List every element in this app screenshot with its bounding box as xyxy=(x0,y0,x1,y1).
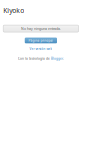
staticText: . xyxy=(63,56,64,61)
staticText: Página principal xyxy=(28,38,53,43)
staticText: Con la tecnología de xyxy=(18,56,51,61)
button[interactable]: Ver versión web xyxy=(29,47,52,51)
staticText: Ver versión web xyxy=(29,47,52,51)
staticText: Kiyoko xyxy=(3,6,24,15)
button[interactable]: Blogger xyxy=(51,56,63,61)
button[interactable]: Página principal xyxy=(25,38,57,43)
staticText: Blogger xyxy=(51,56,63,61)
staticText: No hay ninguna entrada. xyxy=(21,26,61,31)
